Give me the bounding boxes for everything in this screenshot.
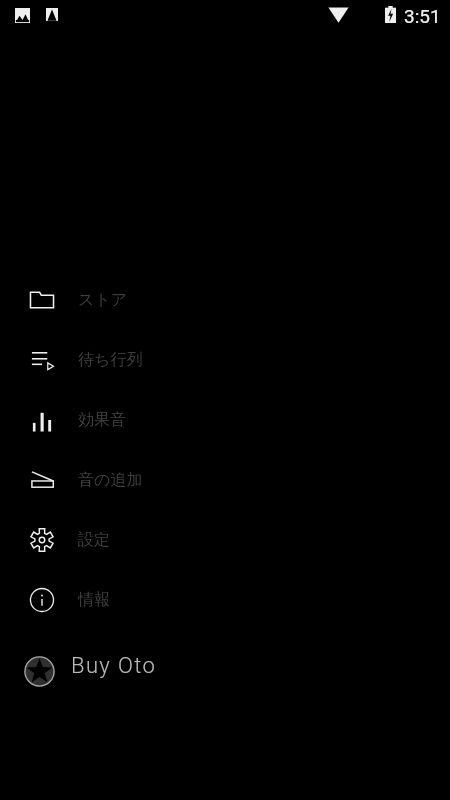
other: Wi-Fi xyxy=(328,5,349,23)
other: Screenshot captured xyxy=(15,8,30,23)
staticText: 待ち行列 xyxy=(78,350,143,370)
other: Notification xyxy=(46,8,58,21)
button[interactable]: Equalizer xyxy=(0,390,450,450)
staticText: 3:51 xyxy=(404,5,441,27)
button[interactable]: Media xyxy=(0,450,450,510)
other: About xyxy=(30,588,54,612)
button[interactable]: Queue xyxy=(0,330,450,390)
other: Queue xyxy=(30,348,54,372)
staticText: ストア xyxy=(78,290,128,310)
button[interactable]: Buy Oto xyxy=(0,643,450,699)
staticText: 設定 xyxy=(78,530,110,550)
staticText: 情報 xyxy=(78,590,110,610)
button[interactable]: About xyxy=(0,570,450,630)
other: Buy Oto xyxy=(24,656,55,687)
button[interactable]: Settings xyxy=(0,510,450,570)
other: Media xyxy=(30,468,54,492)
button[interactable]: Store xyxy=(0,270,450,330)
other: Settings xyxy=(30,528,54,552)
staticText: 効果音 xyxy=(78,410,126,430)
other: Equalizer xyxy=(30,408,54,432)
staticText: 音の追加 xyxy=(78,470,143,490)
other: Store xyxy=(30,288,54,312)
staticText: Buy Oto xyxy=(71,653,157,679)
other: Battery charging xyxy=(385,6,396,23)
